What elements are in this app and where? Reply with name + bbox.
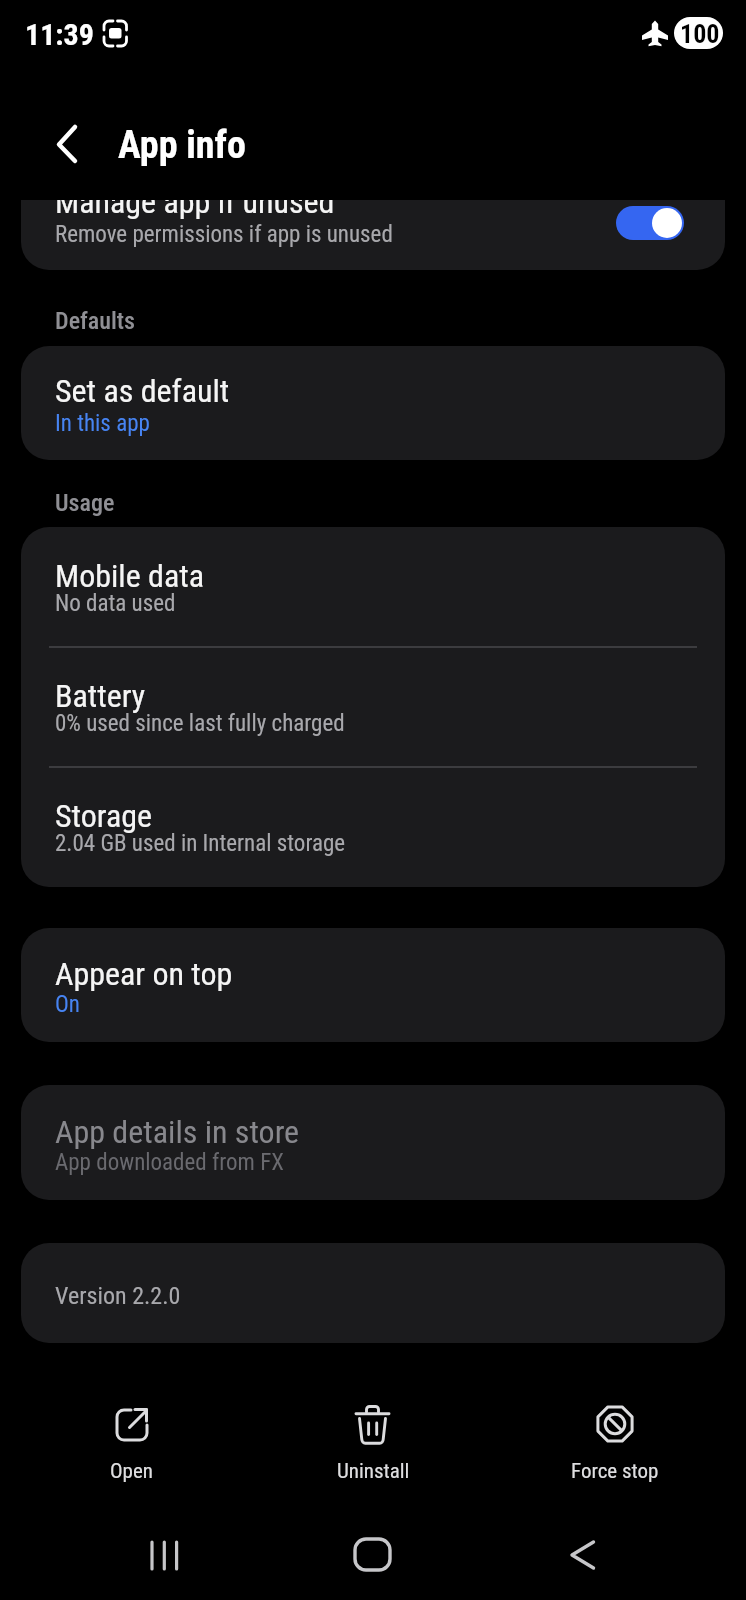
- staticText: App details in store: [55, 1113, 300, 1151]
- staticText: 0% used since last fully charged: [55, 710, 345, 737]
- staticText: Mobile data: [55, 557, 205, 595]
- button[interactable]: [21, 200, 725, 270]
- button[interactable]: [555, 1392, 675, 1488]
- staticText: In this app: [55, 410, 150, 437]
- staticText: Manage app if unused: [55, 200, 335, 221]
- staticText: Battery: [55, 677, 146, 715]
- button[interactable]: [616, 206, 684, 240]
- staticText: 2.04 GB used in Internal storage: [55, 830, 346, 857]
- staticText: Remove permissions if app is unused: [55, 221, 393, 248]
- button[interactable]: [21, 928, 725, 1042]
- staticText: On: [55, 991, 80, 1018]
- button[interactable]: [21, 527, 725, 646]
- button[interactable]: [533, 1515, 633, 1590]
- button[interactable]: [71, 1392, 191, 1488]
- button[interactable]: [323, 1515, 423, 1590]
- staticText: Force stop: [571, 1459, 659, 1484]
- staticText: Defaults: [55, 307, 136, 335]
- button[interactable]: [21, 647, 725, 766]
- staticText: Open: [110, 1459, 153, 1484]
- button[interactable]: [115, 1515, 215, 1590]
- staticText: 100: [680, 19, 720, 49]
- staticText: Uninstall: [337, 1459, 410, 1484]
- button[interactable]: [40, 116, 92, 172]
- button[interactable]: [313, 1392, 433, 1488]
- staticText: App info: [118, 123, 246, 168]
- staticText: Usage: [55, 489, 115, 517]
- button[interactable]: [21, 346, 725, 460]
- button[interactable]: [21, 767, 725, 887]
- staticText: Appear on top: [55, 955, 233, 993]
- staticText: No data used: [55, 590, 176, 617]
- staticText: Version 2.2.0: [55, 1282, 181, 1310]
- staticText: 11:39: [25, 17, 94, 52]
- staticText: App downloaded from FX: [55, 1149, 284, 1176]
- staticText: Storage: [55, 797, 153, 835]
- staticText: Set as default: [55, 372, 230, 410]
